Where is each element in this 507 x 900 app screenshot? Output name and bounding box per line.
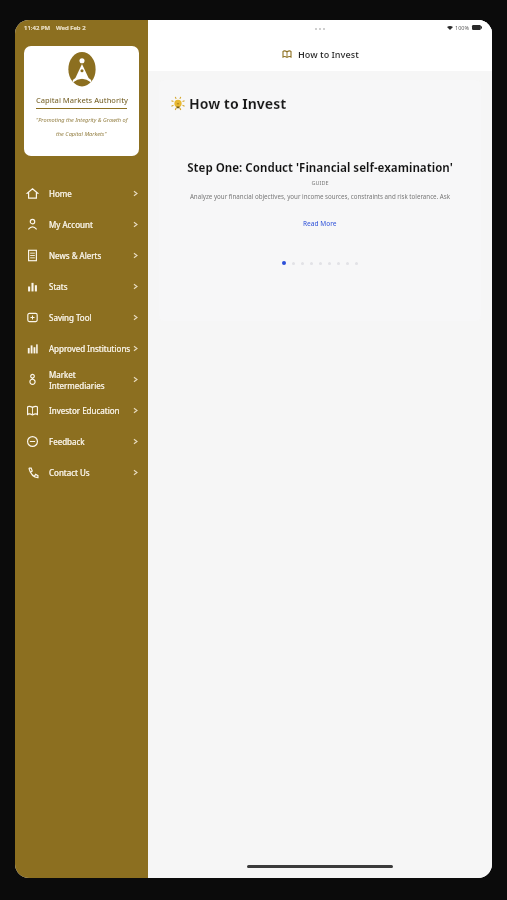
staticText: GUIDE [159,179,481,186]
button[interactable]: Read More [297,217,343,230]
staticText: News & Alerts [49,250,132,261]
staticText: Feedback [49,436,132,447]
button[interactable]: News & Alerts [15,240,148,271]
button[interactable]: Approved Institutions [15,333,148,364]
staticText: Saving Tool [49,312,132,323]
staticText: My Account [49,219,132,230]
button[interactable]: My Account [15,209,148,240]
staticText: Home [49,188,132,199]
staticText: 11:42 PM [24,24,51,32]
button[interactable]: Saving Tool [15,302,148,333]
staticText: Capital Markets Authority [36,95,128,105]
staticText: Market Intermediaries [49,369,132,391]
staticText: Approved Institutions [49,343,132,354]
staticText: Stats [49,281,132,292]
staticText: How to Invest [189,94,287,113]
staticText: "Promoting the Integrity & Growth of [36,116,128,124]
button[interactable]: Market Intermediaries [15,364,148,395]
button[interactable]: Feedback [15,426,148,457]
button[interactable]: Capital Markets Authority [24,46,139,156]
staticText: Contact Us [49,467,132,478]
staticText: Analyze your financial objectives, your … [169,192,471,200]
button[interactable]: Investor Education [15,395,148,426]
button[interactable]: Stats [15,271,148,302]
staticText: Wed Feb 2 [56,24,86,32]
staticText: How to Invest [298,48,359,60]
button[interactable]: Home [15,178,148,209]
staticText: the Capital Markets" [56,130,107,138]
button[interactable]: Contact Us [15,457,148,488]
staticText: Read More [303,219,337,228]
staticText: Step One: Conduct 'Financial self-examin… [163,160,477,176]
staticText: 100% [455,24,470,31]
staticText: Investor Education [49,405,132,416]
